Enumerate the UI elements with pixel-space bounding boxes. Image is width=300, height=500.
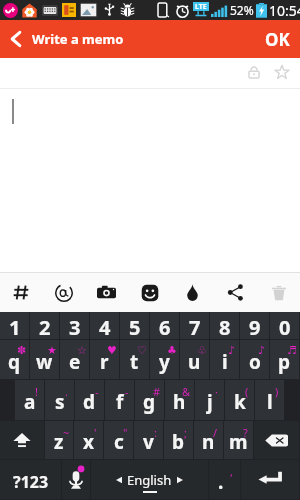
button[interactable]: a <box>15 380 44 420</box>
staticText: Write a memo <box>32 30 124 48</box>
staticText: 3 <box>69 314 81 341</box>
button[interactable]: u <box>180 340 209 379</box>
staticText: 0 <box>279 314 291 341</box>
button[interactable]: j <box>195 380 224 420</box>
staticText: ; <box>184 425 187 440</box>
button[interactable]: 0 <box>270 312 299 339</box>
staticText: b <box>172 429 185 455</box>
staticText: - <box>95 384 99 399</box>
button[interactable]: l <box>255 380 284 420</box>
button[interactable]: h <box>165 380 194 420</box>
staticText: d <box>83 389 96 415</box>
button[interactable]: i <box>210 340 239 379</box>
button[interactable]: e <box>60 340 89 379</box>
button[interactable]: b <box>164 421 193 459</box>
staticText: - <box>125 384 129 399</box>
button[interactable]: 2 <box>30 312 59 339</box>
staticText: : <box>154 425 157 440</box>
button[interactable]: Delete <box>257 273 300 312</box>
staticText: 5 <box>129 314 141 341</box>
button[interactable]: Hashtag <box>0 273 42 312</box>
staticText: & <box>182 384 191 399</box>
button[interactable]: Ink <box>171 273 214 312</box>
button[interactable]: Share <box>214 273 257 312</box>
button[interactable]: f <box>105 380 134 420</box>
button[interactable]: m <box>224 421 253 459</box>
button[interactable]: Emoji <box>128 273 171 312</box>
button[interactable]: 5 <box>120 312 149 339</box>
button[interactable]: Favourite <box>270 60 294 84</box>
staticText: r <box>100 349 109 375</box>
staticText: 1 <box>9 314 21 341</box>
button[interactable]: 8 <box>210 312 239 339</box>
staticText: g <box>143 389 156 415</box>
button[interactable]: d <box>75 380 104 420</box>
button[interactable]: r <box>90 340 119 379</box>
staticText: ♧ <box>197 344 207 357</box>
button[interactable]: 4 <box>90 312 119 339</box>
button[interactable]: k <box>225 380 254 420</box>
button[interactable]: mic <box>62 460 90 499</box>
button[interactable]: 7 <box>180 312 209 339</box>
button[interactable]: y <box>150 340 179 379</box>
button[interactable]: t <box>120 340 149 379</box>
staticText: ( <box>245 384 249 399</box>
button[interactable]: o <box>240 340 269 379</box>
staticText: ♣ <box>167 344 177 357</box>
staticText: v <box>143 429 154 455</box>
staticText: f <box>116 389 124 415</box>
staticText: o <box>249 349 261 375</box>
staticText: s <box>55 389 65 415</box>
button[interactable]: x <box>74 421 103 459</box>
staticText: ♬ <box>287 344 297 357</box>
staticText: · <box>215 384 218 399</box>
staticText: / <box>213 425 218 440</box>
staticText: . <box>218 469 224 495</box>
staticText: " <box>123 425 128 440</box>
staticText: q <box>8 349 21 375</box>
staticText: 8 <box>219 314 231 341</box>
staticText: h <box>173 389 186 415</box>
button[interactable]: English <box>91 460 208 499</box>
staticText: p <box>278 349 291 375</box>
staticText: . <box>65 384 68 399</box>
staticText: 2 <box>39 314 51 341</box>
staticText: OK <box>265 28 290 51</box>
button[interactable]: 1 <box>0 312 29 339</box>
button[interactable]: ↵ <box>241 460 299 499</box>
staticText: c <box>114 429 124 455</box>
staticText: ' <box>94 425 97 440</box>
button[interactable]: g <box>135 380 164 420</box>
button[interactable]: q <box>0 340 29 379</box>
button[interactable]: 9 <box>240 312 269 339</box>
button[interactable]: . <box>209 460 240 499</box>
button[interactable]: 3 <box>60 312 89 339</box>
button[interactable]: OK <box>253 20 300 58</box>
staticText: 10:54 <box>269 1 300 20</box>
staticText: LTE <box>195 2 207 11</box>
button[interactable]: Lock <box>242 60 266 84</box>
staticText: e <box>69 349 81 375</box>
staticText: ☆ <box>77 344 87 357</box>
button[interactable]: Mention <box>42 273 85 312</box>
button[interactable]: n <box>194 421 223 459</box>
button[interactable]: ?123 <box>0 460 61 499</box>
button[interactable]: Camera <box>85 273 128 312</box>
staticText: 52% <box>230 2 254 18</box>
button[interactable]: c <box>104 421 133 459</box>
button[interactable]: v <box>134 421 163 459</box>
button[interactable]: z <box>45 421 73 459</box>
staticText: j <box>207 389 213 415</box>
button[interactable]: Back <box>0 20 32 58</box>
button[interactable]: s <box>45 380 74 420</box>
staticText: ? <box>243 425 248 440</box>
button[interactable]: ⇧ <box>0 421 44 459</box>
staticText: 7 <box>189 314 201 341</box>
staticText: n <box>202 429 215 455</box>
button[interactable]: ⌫ <box>254 421 299 459</box>
staticText: w <box>36 349 53 375</box>
button[interactable]: w <box>30 340 59 379</box>
button[interactable]: 6 <box>150 312 179 339</box>
button[interactable]: p <box>270 340 299 379</box>
staticText: ! <box>35 384 38 399</box>
